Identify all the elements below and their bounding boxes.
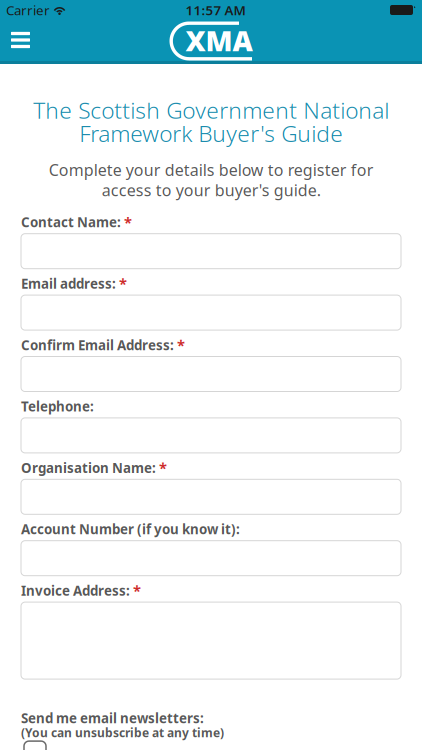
button[interactable] (21, 479, 401, 514)
staticText: Send me email newsletters: (21, 709, 204, 727)
button[interactable] (21, 541, 401, 576)
staticText: Contact Name: (21, 213, 121, 231)
button[interactable] (21, 234, 401, 269)
button[interactable]: Menu (0, 20, 43, 61)
button[interactable] (21, 418, 401, 453)
staticText: Organisation Name: (21, 459, 156, 477)
staticText: * (177, 335, 185, 355)
staticText: Email address: (21, 275, 116, 292)
staticText: (You can unsubscribe at any time) (21, 725, 224, 740)
staticText: * (124, 212, 132, 232)
staticText: Account Number (if you know it): (21, 520, 240, 538)
staticText: XMA (185, 22, 252, 59)
staticText: 11:57 AM (185, 1, 245, 19)
staticText: * (159, 458, 167, 478)
button[interactable]: XMA home (170, 20, 252, 60)
staticText: Telephone: (21, 397, 94, 415)
staticText: * (119, 274, 127, 293)
staticText: Confirm Email Address: (21, 336, 174, 354)
staticText: Carrier (6, 1, 50, 19)
button[interactable] (21, 356, 401, 391)
button[interactable] (21, 602, 401, 679)
staticText: Complete your details below to register … (48, 159, 373, 201)
button[interactable]: Send me email newsletters (24, 741, 46, 750)
staticText: * (133, 581, 141, 600)
staticText: Invoice Address: (21, 582, 130, 599)
button[interactable] (21, 295, 401, 330)
staticText: The Scottish Government National Framewo… (33, 95, 389, 148)
